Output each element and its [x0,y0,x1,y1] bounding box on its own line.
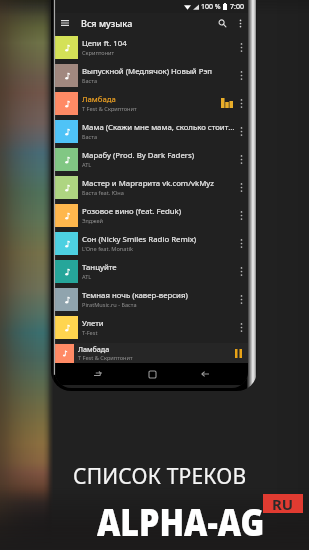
button[interactable]: Мастер и Маргарита vk.com/vkMyz [55,173,248,201]
staticText: Выпускной (Медлячок) Новый Рэп [82,66,212,77]
button[interactable]: Track options [235,229,247,257]
staticText: Баста feat. Юна [82,189,124,197]
staticText: Скриптонит [82,49,115,57]
button[interactable]: Track options [235,173,247,201]
button[interactable]: Танцуйте [55,257,248,285]
button[interactable]: Темная ночь (кавер-версия) [55,285,248,313]
staticText: Мастер и Маргарита vk.com/vkMyz [82,178,214,189]
staticText: ATL [82,273,92,281]
staticText: Ламбада [82,94,116,105]
button[interactable]: Track options [235,257,247,285]
staticText: Баста [82,133,98,141]
button[interactable]: Цепи ft. 104 [55,33,248,61]
staticText: Цепи ft. 104 [82,38,127,49]
button[interactable]: Мама (Скажи мне мама, сколько стоит моя… [55,117,248,145]
staticText: Баста [82,77,98,85]
button[interactable]: Розовое вино (feat. Feduk) [55,201,248,229]
button[interactable]: Ламбада [55,89,248,117]
button[interactable]: Track options [235,117,247,145]
button[interactable]: Выпускной (Медлячок) Новый Рэп [55,61,248,89]
staticText: Темная ночь (кавер-версия) [82,290,188,301]
staticText: 100 % [201,2,221,12]
staticText: Элджей [82,217,103,225]
button[interactable]: Track options [235,89,247,117]
staticText: Танцуйте [82,262,117,273]
staticText: ATL [82,161,92,169]
staticText: 7:00 [230,2,244,12]
staticText: T Fest & Скриптонит [82,105,137,113]
button[interactable]: Марабу (Prod. By Dark Faders) [55,145,248,173]
staticText: T-Fest [82,329,98,337]
button[interactable]: Home [141,363,163,385]
staticText: Мама (Скажи мне мама, сколько стоит моя… [82,122,235,133]
button[interactable]: Track options [235,33,247,61]
staticText: Вся музыка [81,17,133,29]
button[interactable]: Track options [235,201,247,229]
button[interactable]: Open navigation menu [55,13,75,33]
button[interactable]: Pause [229,344,247,362]
button[interactable]: Search [212,13,232,33]
staticText: RU [272,494,294,513]
staticText: PiratMusic.ru - Баста [82,301,137,309]
staticText: Сон (Nicky Smiles Radio Remix) [82,234,197,245]
button[interactable]: Track options [235,285,247,313]
staticText: Розовое вино (feat. Feduk) [82,206,182,217]
staticText: L'One feat. Monatik [82,245,133,253]
button[interactable]: Track options [235,313,247,341]
button[interactable]: Сон (Nicky Smiles Radio Remix) [55,229,248,257]
button[interactable]: Back [194,363,216,385]
staticText: Улети [82,318,104,329]
button[interactable]: Track options [235,61,247,89]
staticText: СПИСОК ТРЕКОВ [73,462,247,491]
button[interactable]: Ламбада [55,343,248,363]
staticText: Марабу (Prod. By Dark Faders) [82,150,195,161]
button[interactable]: More options [232,15,248,31]
button[interactable]: Recent apps [87,363,109,385]
staticText: Ламбада [78,344,110,354]
staticText: T Fest & Скриптонит [78,354,133,362]
button[interactable]: Улети [55,313,248,341]
staticText: ALPHA-AG [97,496,265,546]
button[interactable]: Track options [235,145,247,173]
